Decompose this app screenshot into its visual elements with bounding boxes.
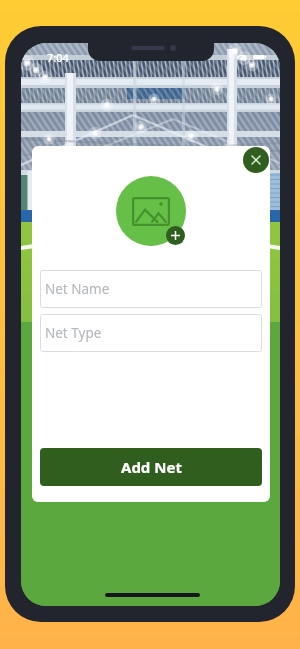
staticText: 7:04: [47, 50, 69, 65]
staticText: Net Type: [45, 324, 102, 342]
button[interactable]: Choose image: [116, 176, 186, 246]
button[interactable]: Add photo: [166, 226, 185, 245]
staticText: Net Name: [45, 280, 110, 298]
button[interactable]: Close: [243, 147, 269, 173]
button[interactable]: Net Type: [40, 314, 262, 352]
button[interactable]: Add Net: [40, 448, 262, 486]
staticText: Add Net: [121, 457, 182, 477]
button[interactable]: Net Name: [40, 270, 262, 308]
